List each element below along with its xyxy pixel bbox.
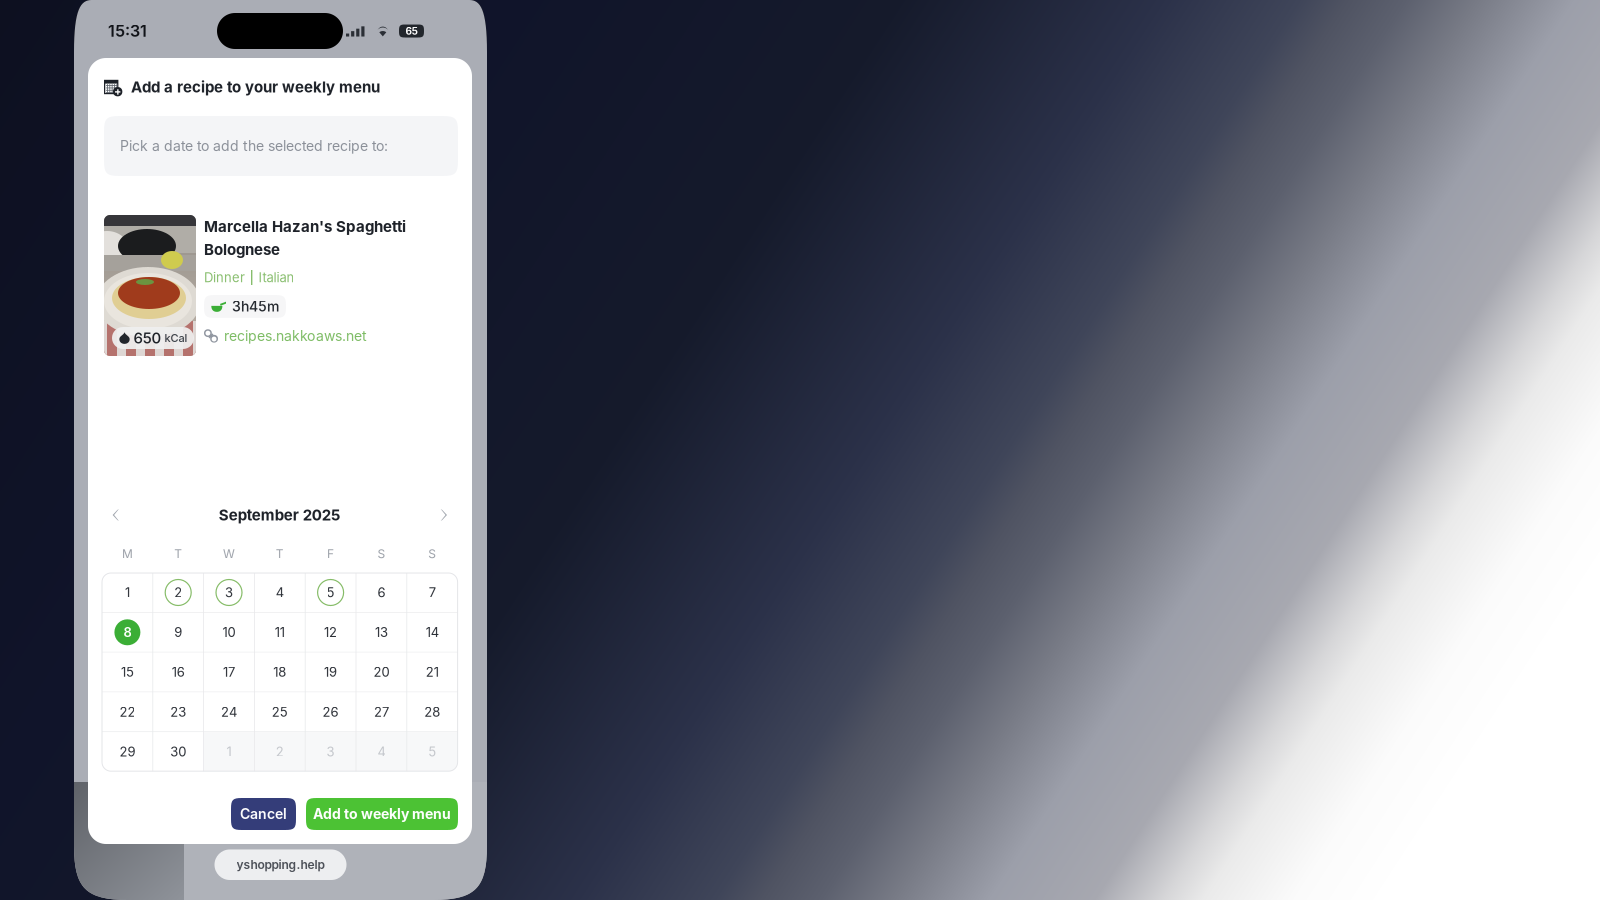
staticText: Cancel xyxy=(240,805,287,822)
staticText: 25 xyxy=(272,704,288,720)
staticText: 30 xyxy=(170,744,186,759)
staticText: 27 xyxy=(374,704,389,720)
button[interactable]: 24 xyxy=(204,692,254,731)
button[interactable]: 29 xyxy=(102,732,153,771)
button[interactable]: 1 xyxy=(204,732,254,771)
staticText: Marcella Hazan's Spaghetti xyxy=(204,217,406,235)
button[interactable]: 19 xyxy=(305,653,356,692)
staticText: 3 xyxy=(327,744,335,759)
staticText: 10 xyxy=(222,624,235,640)
staticText: Italian xyxy=(258,270,294,285)
button[interactable]: 3 xyxy=(204,573,254,612)
staticText: September 2025 xyxy=(219,506,341,524)
staticText: Bolognese xyxy=(204,240,280,258)
button[interactable]: 1 xyxy=(102,573,153,612)
staticText: 16 xyxy=(172,664,185,680)
staticText: T xyxy=(174,547,182,561)
button[interactable]: 25 xyxy=(254,692,305,731)
staticText: kCal xyxy=(164,331,187,345)
button[interactable]: 13 xyxy=(356,613,407,652)
staticText: 24 xyxy=(221,704,237,720)
button[interactable]: 17 xyxy=(204,653,254,692)
staticText: 4 xyxy=(377,744,385,759)
staticText: 3h45m xyxy=(232,298,279,315)
staticText: Dinner xyxy=(204,270,245,285)
button[interactable]: 7 xyxy=(407,573,458,612)
button[interactable]: 12 xyxy=(305,613,356,652)
staticText: 17 xyxy=(223,664,235,680)
button[interactable]: 8 xyxy=(102,613,153,652)
staticText: S xyxy=(428,547,436,561)
staticText: Kipsate | Sate Ayam xyxy=(207,820,354,838)
staticText: 15:31 xyxy=(108,21,147,41)
staticText: 1 xyxy=(125,585,130,600)
button[interactable]: 16 xyxy=(153,653,204,692)
button[interactable]: 14 xyxy=(407,613,458,652)
staticText: S xyxy=(377,547,385,561)
button[interactable]: 5 xyxy=(407,732,458,771)
staticText: 20 xyxy=(373,664,389,680)
button[interactable]: 22 xyxy=(102,692,153,731)
button[interactable]: 5 xyxy=(305,573,356,612)
staticText: 21 xyxy=(426,664,439,680)
staticText: 2 xyxy=(276,744,284,759)
staticText: 14 xyxy=(426,624,439,640)
staticText: Pick a date to add the selected recipe t… xyxy=(120,137,388,154)
button[interactable]: 2 xyxy=(254,732,305,771)
button[interactable]: 6 xyxy=(356,573,407,612)
staticText: 18 xyxy=(273,664,286,680)
staticText: recipes.nakkoaws.net xyxy=(224,327,367,344)
button[interactable]: 18 xyxy=(254,653,305,692)
staticText: 28 xyxy=(424,704,440,720)
staticText: 7 xyxy=(429,585,436,600)
staticText: M xyxy=(122,547,133,561)
button[interactable]: 9 xyxy=(153,613,204,652)
button[interactable]: 4 xyxy=(254,573,305,612)
staticText: 3 xyxy=(225,585,233,600)
staticText: yshopping.help xyxy=(236,857,324,872)
staticText: T xyxy=(276,547,284,561)
button[interactable]: 3 xyxy=(305,732,356,771)
staticText: 29 xyxy=(119,744,135,759)
staticText: 12 xyxy=(324,624,337,640)
button[interactable]: 2 xyxy=(153,573,204,612)
staticText: 11 xyxy=(275,624,285,640)
staticText: 2 xyxy=(174,585,182,600)
staticText: 8 xyxy=(123,624,131,640)
staticText: 9 xyxy=(174,624,182,640)
staticText: 65 xyxy=(405,25,417,37)
button[interactable]: Next month xyxy=(432,502,458,528)
staticText: 19 xyxy=(324,664,337,680)
staticText: 13 xyxy=(375,624,388,640)
button[interactable]: 28 xyxy=(407,692,458,731)
staticText: 650 xyxy=(133,329,161,347)
button[interactable]: 26 xyxy=(305,692,356,731)
staticText: 26 xyxy=(323,704,339,720)
staticText: Add to weekly menu xyxy=(313,805,451,822)
button[interactable]: recipes.nakkoaws.net xyxy=(204,326,434,346)
staticText: 23 xyxy=(170,704,186,720)
button[interactable]: 30 xyxy=(153,732,204,771)
staticText: 1 xyxy=(226,744,231,759)
staticText: 15 xyxy=(121,664,134,680)
button[interactable]: 20 xyxy=(356,653,407,692)
button[interactable]: 10 xyxy=(204,613,254,652)
button[interactable]: Add to weekly menu xyxy=(306,798,458,830)
button[interactable]: 15 xyxy=(102,653,153,692)
button[interactable]: 4 xyxy=(356,732,407,771)
staticText: F xyxy=(327,547,334,561)
button[interactable]: 27 xyxy=(356,692,407,731)
button[interactable]: Previous month xyxy=(102,502,128,528)
button[interactable]: 23 xyxy=(153,692,204,731)
button[interactable]: 21 xyxy=(407,653,458,692)
staticText: 5 xyxy=(428,744,436,759)
staticText: W xyxy=(223,547,235,561)
staticText: Add a recipe to your weekly menu xyxy=(131,78,380,96)
staticText: 5 xyxy=(327,585,335,600)
staticText: 4 xyxy=(276,585,284,600)
button[interactable]: 11 xyxy=(254,613,305,652)
button[interactable]: Cancel xyxy=(231,798,296,830)
staticText: 6 xyxy=(377,585,385,600)
staticText: 22 xyxy=(119,704,135,720)
